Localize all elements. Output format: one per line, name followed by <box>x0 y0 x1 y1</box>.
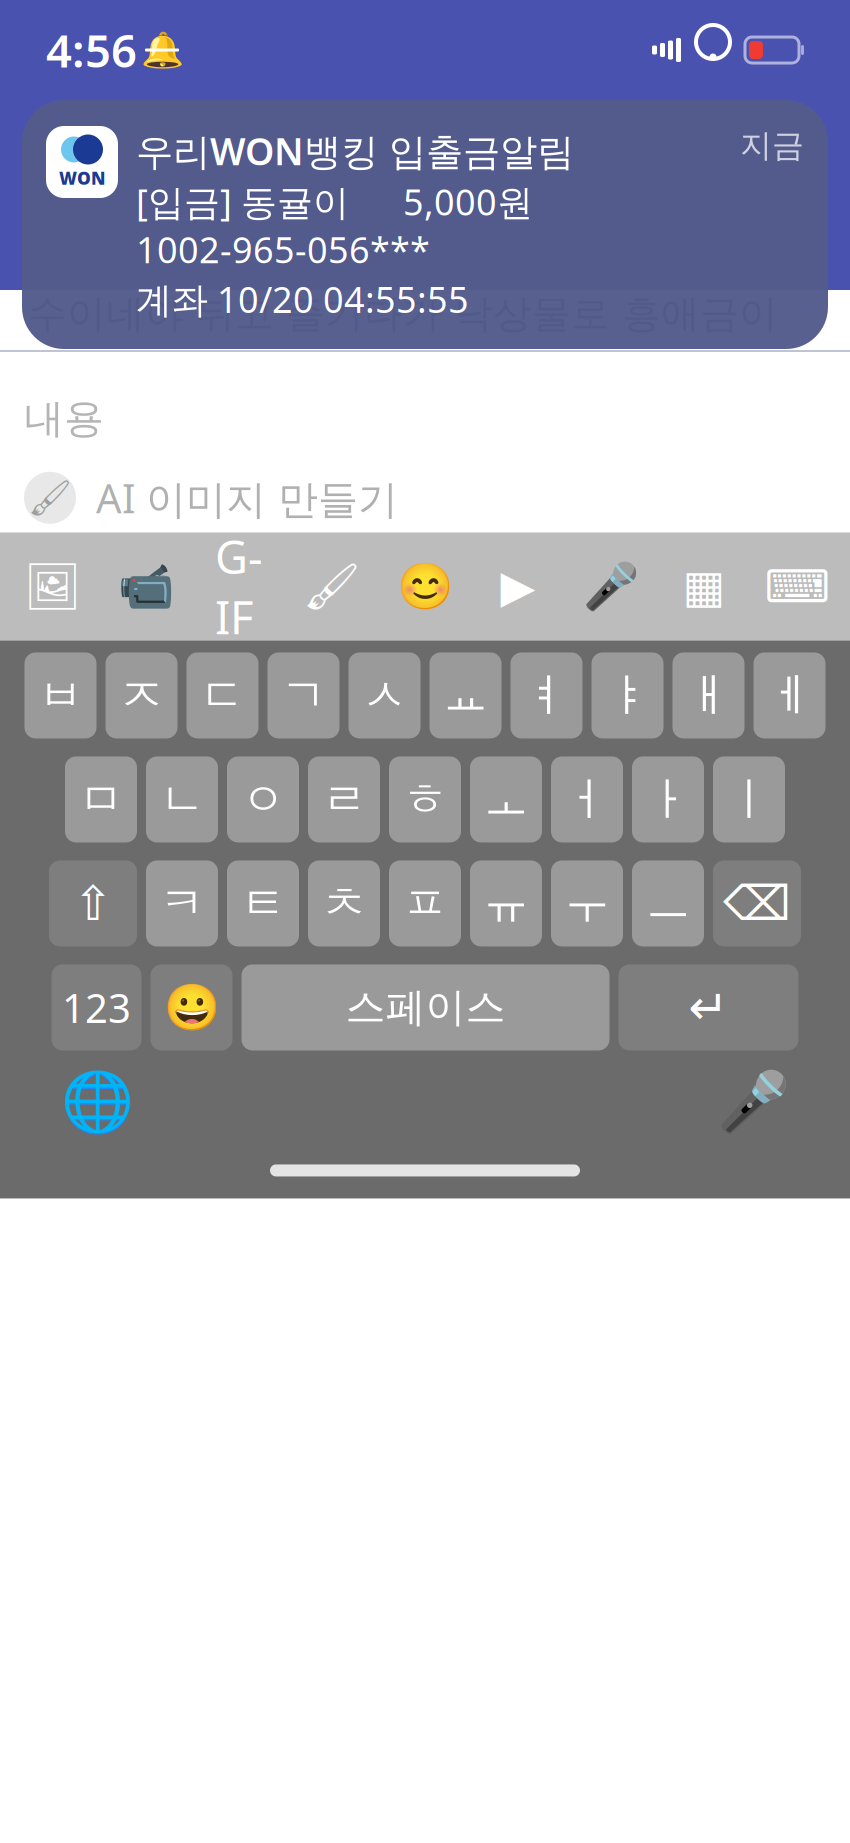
staticText: ㅔ <box>767 668 812 723</box>
staticText: ㅈ <box>119 668 164 723</box>
staticText: ㄱ <box>281 668 326 723</box>
button[interactable]: ㅡ <box>632 860 704 946</box>
button[interactable]: Next keyboard <box>60 1064 134 1138</box>
staticText: 내용 <box>24 394 104 443</box>
button[interactable]: ㅎ <box>389 756 461 842</box>
staticText: ㅂ <box>38 668 83 723</box>
staticText: 계좌 10/20 04:55:55 <box>136 275 469 323</box>
staticText: AI 이미지 만들기 <box>96 471 398 524</box>
staticText: 📹 <box>118 561 174 612</box>
staticText: 🌐 <box>60 1068 133 1135</box>
staticText: 4:56 <box>46 20 137 80</box>
staticText: ㅋ <box>159 876 204 931</box>
staticText: ㅣ <box>726 772 771 827</box>
button[interactable]: ㅕ <box>510 652 582 738</box>
staticText: ㅑ <box>605 668 650 723</box>
button[interactable]: 123 <box>51 964 141 1050</box>
staticText: 수이네야 뒤고 즐기다가 낙상물로 흥애금이 <box>28 290 778 338</box>
staticText: ㅁ <box>78 772 123 827</box>
staticText: ㄷ <box>200 668 245 723</box>
staticText: ㅠ <box>483 876 528 931</box>
staticText: ㅍ <box>402 876 447 931</box>
staticText: 스페이스 <box>345 983 505 1032</box>
staticText: ▶ <box>500 561 535 612</box>
button[interactable]: WON <box>22 100 828 349</box>
staticText: ⇧ <box>73 876 113 931</box>
staticText: ▦ <box>682 561 725 612</box>
button[interactable]: ㄱ <box>267 652 339 738</box>
button[interactable]: ㅇ <box>227 756 299 842</box>
staticText: 우리WON뱅킹 입출금알림 <box>136 126 574 176</box>
staticText: ㄴ <box>159 772 204 827</box>
button[interactable]: Delete <box>713 860 801 946</box>
button[interactable]: Emoji <box>150 964 232 1050</box>
button[interactable]: ㅁ <box>65 756 137 842</box>
button[interactable]: ㅐ <box>672 652 744 738</box>
staticText: 🎤 <box>583 561 639 612</box>
button[interactable]: ㅑ <box>591 652 663 738</box>
staticText: ⌨ <box>764 561 829 612</box>
staticText: ㅎ <box>402 772 447 827</box>
staticText: ㅌ <box>240 876 285 931</box>
button[interactable]: Space <box>241 964 609 1050</box>
staticText: WON <box>59 166 105 189</box>
staticText: ㅕ <box>524 668 569 723</box>
staticText: 🔔 <box>140 30 183 70</box>
staticText: ㅓ <box>564 772 609 827</box>
staticText: ㄹ <box>321 772 366 827</box>
staticText: ㅊ <box>321 876 366 931</box>
button[interactable]: ㅣ <box>713 756 785 842</box>
button[interactable]: ㅓ <box>551 756 623 842</box>
button[interactable]: ㅋ <box>146 860 218 946</box>
button[interactable]: Hide keyboard <box>766 555 828 617</box>
button[interactable]: Voice <box>580 555 642 617</box>
staticText: ㅛ <box>443 668 488 723</box>
button[interactable]: ㅏ <box>632 756 704 842</box>
staticText: 123 <box>62 981 131 1034</box>
button[interactable]: ㅔ <box>753 652 825 738</box>
staticText: GIF <box>215 526 263 647</box>
button[interactable]: AI image <box>301 555 363 617</box>
button[interactable]: ㅗ <box>470 756 542 842</box>
button[interactable]: Sticker <box>394 555 456 617</box>
button[interactable]: ㅊ <box>308 860 380 946</box>
staticText: 지금 <box>740 126 804 165</box>
staticText: ㅅ <box>362 668 407 723</box>
button[interactable]: Return <box>618 964 798 1050</box>
button[interactable]: ㅛ <box>429 652 501 738</box>
staticText: ㅗ <box>483 772 528 827</box>
button[interactable]: ㄴ <box>146 756 218 842</box>
button[interactable]: 🖌 <box>0 443 850 524</box>
button[interactable]: Photo <box>22 555 84 617</box>
button[interactable]: ㄹ <box>308 756 380 842</box>
button[interactable]: Video link <box>487 555 549 617</box>
staticText: 🖼 <box>24 561 82 612</box>
staticText: ㅇ <box>240 772 285 827</box>
button[interactable]: GIF <box>208 555 270 617</box>
staticText: ⌫ <box>723 876 791 931</box>
staticText: ㅏ <box>645 772 690 827</box>
button[interactable]: ㅂ <box>24 652 96 738</box>
button[interactable]: ㅜ <box>551 860 623 946</box>
staticText: ㅡ <box>645 876 690 931</box>
staticText: 😀 <box>163 982 219 1033</box>
button[interactable]: ㅅ <box>348 652 420 738</box>
button[interactable]: ㅠ <box>470 860 542 946</box>
staticText: 🖌 <box>28 478 72 518</box>
staticText: 🎤 <box>716 1068 789 1135</box>
button[interactable]: ㄷ <box>186 652 258 738</box>
button[interactable]: ㅍ <box>389 860 461 946</box>
button[interactable]: ㅌ <box>227 860 299 946</box>
button[interactable]: Shift <box>49 860 137 946</box>
button[interactable]: Video <box>115 555 177 617</box>
staticText: 🖌 <box>303 561 361 612</box>
staticText: ㅜ <box>564 876 609 931</box>
staticText: 😊 <box>397 561 453 612</box>
staticText: ↵ <box>688 980 728 1035</box>
button[interactable]: Dictation <box>716 1064 790 1138</box>
staticText: [입금] 동귤이 5,000원 1002-965-056*** <box>136 178 533 273</box>
button[interactable]: More <box>673 555 735 617</box>
staticText: ㅐ <box>686 668 731 723</box>
button[interactable]: ㅈ <box>105 652 177 738</box>
